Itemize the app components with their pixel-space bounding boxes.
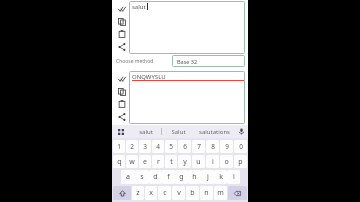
button[interactable]: 5 (165, 140, 177, 153)
staticText: r (157, 157, 160, 167)
button[interactable]: j (201, 170, 214, 184)
button[interactable]: Copy (116, 86, 127, 97)
staticText: 6 (183, 142, 187, 151)
button[interactable]: Voice input (234, 125, 248, 138)
button[interactable]: o (220, 155, 233, 168)
staticText: j (207, 172, 209, 182)
staticText: 4 (156, 142, 160, 151)
staticText: q (117, 157, 122, 167)
button[interactable]: v (172, 186, 185, 200)
button[interactable]: 8 (206, 140, 219, 153)
button[interactable]: q (113, 155, 125, 168)
staticText: salutations (199, 128, 230, 136)
staticText: y (183, 157, 187, 167)
button[interactable]: salut (129, 1, 245, 54)
staticText: 2 (130, 142, 134, 151)
staticText: x (149, 188, 153, 198)
staticText: ONQWYSLU (132, 73, 166, 81)
staticText: Choose method (116, 58, 172, 65)
button[interactable]: r (152, 155, 164, 168)
staticText: a (126, 172, 130, 182)
button[interactable]: f (162, 170, 175, 184)
button[interactable]: n (200, 186, 213, 200)
staticText: 3 (143, 142, 147, 151)
button[interactable]: c (158, 186, 171, 200)
staticText: v (177, 188, 181, 198)
button[interactable]: p (234, 155, 247, 168)
button[interactable]: 3 (139, 140, 151, 153)
staticText: 0 (239, 142, 243, 151)
button[interactable]: a (121, 170, 135, 184)
button[interactable]: Copy (116, 16, 127, 27)
staticText: 1 (117, 142, 121, 151)
button[interactable]: Select all (116, 73, 127, 84)
button[interactable]: 1 (113, 140, 125, 153)
staticText: e (143, 157, 147, 167)
staticText: salut (139, 128, 153, 136)
button[interactable]: w (126, 155, 138, 168)
button[interactable]: Select all (116, 3, 127, 14)
staticText: g (179, 172, 184, 182)
button[interactable]: 0 (234, 140, 247, 153)
staticText: i (212, 157, 214, 167)
staticText: t (170, 157, 173, 167)
staticText: n (204, 188, 209, 198)
button[interactable]: Paste (116, 28, 127, 39)
staticText: p (238, 157, 243, 167)
button[interactable]: y (178, 155, 191, 168)
button[interactable]: salut (130, 125, 161, 138)
staticText: k (219, 172, 223, 182)
button[interactable]: Paste (116, 98, 127, 109)
button[interactable]: Share (116, 41, 127, 52)
button[interactable]: k (214, 170, 227, 184)
button[interactable]: g (175, 170, 188, 184)
staticText: salut (132, 3, 146, 11)
button[interactable]: s (135, 170, 149, 184)
button[interactable]: e (139, 155, 151, 168)
staticText: 8 (211, 142, 215, 151)
button[interactable]: d (149, 170, 162, 184)
button[interactable]: 7 (192, 140, 205, 153)
button[interactable]: Salut (162, 125, 194, 138)
button[interactable]: b (186, 186, 199, 200)
button[interactable]: x (145, 186, 157, 200)
button[interactable]: l (227, 170, 240, 184)
staticText: Base 32 (177, 58, 198, 65)
button[interactable]: 4 (152, 140, 164, 153)
staticText: f (167, 172, 170, 182)
button[interactable]: Shift (113, 186, 131, 200)
button[interactable]: Share (116, 111, 127, 122)
button[interactable]: salutations (194, 125, 234, 138)
button[interactable]: z (132, 186, 144, 200)
staticText: Salut (171, 128, 186, 136)
staticText: h (192, 172, 197, 182)
button[interactable]: m (214, 186, 227, 200)
staticText: 9 (225, 142, 229, 151)
staticText: o (224, 157, 229, 167)
button[interactable]: t (165, 155, 177, 168)
button[interactable]: ONQWYSLU (129, 71, 245, 124)
staticText: s (140, 172, 144, 182)
staticText: d (153, 172, 158, 182)
button[interactable]: Backspace (228, 186, 247, 200)
staticText: u (196, 157, 201, 167)
button[interactable]: h (188, 170, 201, 184)
staticText: 7 (197, 142, 201, 151)
button[interactable]: 2 (126, 140, 138, 153)
staticText: w (129, 157, 135, 167)
button[interactable]: 6 (178, 140, 191, 153)
staticText: b (190, 188, 195, 198)
button[interactable]: Base 32 (172, 55, 245, 67)
staticText: c (163, 188, 167, 198)
staticText: z (136, 188, 140, 198)
button[interactable]: 9 (220, 140, 233, 153)
staticText: m (217, 188, 224, 198)
staticText: l (233, 172, 235, 182)
button[interactable]: Keyboard options (112, 125, 130, 138)
staticText: 5 (169, 142, 173, 151)
button[interactable]: u (192, 155, 205, 168)
button[interactable]: i (206, 155, 219, 168)
